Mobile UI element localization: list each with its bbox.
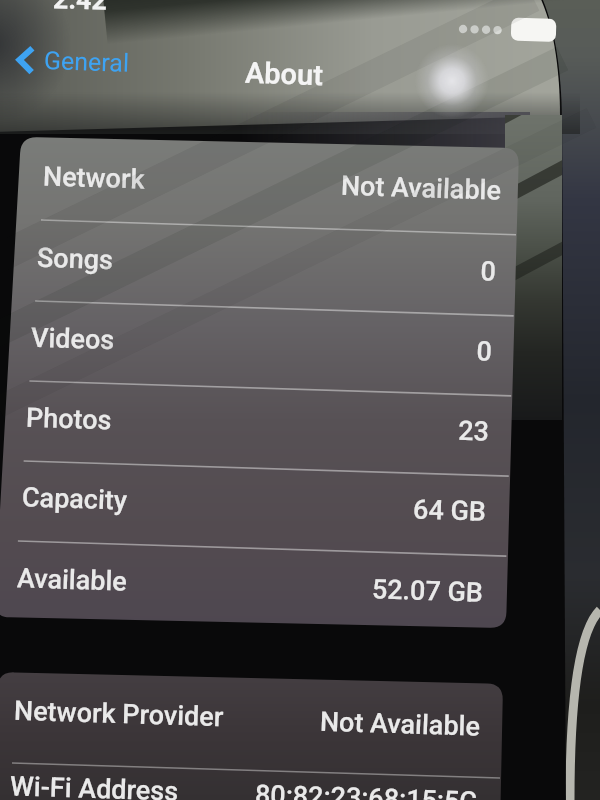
staticText: 52.07 GB bbox=[183, 567, 483, 609]
button[interactable] bbox=[32, 132, 534, 220]
button[interactable] bbox=[20, 293, 522, 381]
button[interactable] bbox=[3, 668, 505, 756]
staticText: Photos bbox=[25, 402, 112, 436]
staticText: Not Available bbox=[180, 701, 480, 743]
staticText: 0 bbox=[196, 246, 496, 288]
other: Battery and signal status bbox=[454, 16, 533, 48]
staticText: About bbox=[244, 56, 324, 92]
button[interactable] bbox=[15, 373, 517, 461]
staticText: Songs bbox=[36, 242, 113, 276]
button[interactable] bbox=[26, 213, 528, 301]
staticText: Videos bbox=[30, 322, 115, 356]
button[interactable] bbox=[6, 534, 508, 622]
staticText: Not Available bbox=[201, 165, 501, 207]
staticText: Wi-Fi Address bbox=[9, 770, 179, 800]
staticText: 0 bbox=[192, 326, 492, 368]
staticText: Network bbox=[42, 160, 145, 196]
staticText: Network Provider bbox=[13, 695, 224, 733]
staticText: Capacity bbox=[21, 481, 128, 517]
button[interactable]: General bbox=[11, 41, 134, 82]
staticText: 80:82:23:68:15:5C bbox=[177, 776, 477, 800]
staticText: Available bbox=[16, 562, 127, 598]
staticText: 2:42 bbox=[52, 0, 108, 17]
button[interactable] bbox=[11, 453, 513, 541]
button[interactable] bbox=[0, 743, 501, 800]
staticText: 64 GB bbox=[186, 486, 486, 528]
staticText: General bbox=[44, 46, 130, 78]
staticText: 23 bbox=[189, 406, 489, 448]
